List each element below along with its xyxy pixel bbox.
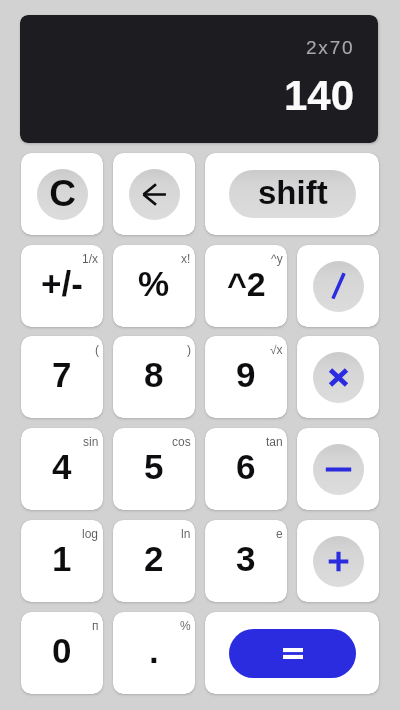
staticText: cos — [172, 435, 191, 448]
button[interactable]: decimal point — [113, 612, 195, 694]
staticText: C — [49, 173, 76, 214]
staticText: +/- — [41, 264, 83, 303]
button[interactable]: percent — [113, 245, 195, 327]
button[interactable]: Divide — [297, 245, 379, 327]
staticText: 6 — [236, 447, 256, 486]
button[interactable]: Subtract — [297, 428, 379, 510]
button[interactable]: Add — [297, 520, 379, 602]
button[interactable]: Clear — [21, 153, 103, 235]
staticText: 7 — [52, 355, 72, 394]
button[interactable]: Backspace — [113, 153, 195, 235]
button[interactable]: 4 — [21, 428, 103, 510]
staticText: 3 — [236, 539, 256, 578]
staticText: 0 — [52, 631, 72, 670]
button[interactable]: 1 — [21, 520, 103, 602]
staticText: % — [138, 264, 170, 303]
staticText: e — [276, 527, 283, 540]
button[interactable]: power of two — [205, 245, 287, 327]
staticText: п — [92, 619, 99, 632]
button[interactable]: equals — [205, 612, 379, 694]
staticText: ln — [181, 527, 191, 540]
button[interactable]: 5 — [113, 428, 195, 510]
button[interactable]: 2x70 — [20, 15, 378, 143]
staticText: 9 — [236, 355, 256, 394]
button[interactable]: shift — [205, 153, 379, 235]
staticText: shift — [258, 174, 328, 211]
staticText: . — [149, 631, 159, 670]
button[interactable]: Multiply — [297, 336, 379, 418]
button[interactable]: 2 — [113, 520, 195, 602]
staticText: 1/x — [82, 252, 99, 265]
staticText: ) — [187, 343, 191, 356]
staticText: ^2 — [227, 265, 266, 303]
staticText: √x — [270, 343, 283, 356]
button[interactable]: 3 — [205, 520, 287, 602]
staticText: 5 — [144, 447, 164, 486]
staticText: 4 — [52, 447, 72, 486]
staticText: ( — [95, 343, 99, 356]
staticText: 2 — [144, 539, 164, 578]
staticText: sin — [83, 435, 99, 448]
staticText: 1 — [52, 539, 72, 578]
staticText: 8 — [144, 355, 164, 394]
button[interactable]: 9 — [205, 336, 287, 418]
button[interactable]: 7 — [21, 336, 103, 418]
staticText: 2x70 — [306, 37, 355, 58]
button[interactable]: 8 — [113, 336, 195, 418]
button[interactable]: 0 — [21, 612, 103, 694]
staticText: 140 — [284, 72, 355, 119]
staticText: tan — [266, 435, 283, 448]
staticText: % — [180, 619, 191, 632]
staticText: log — [82, 527, 99, 540]
staticText: x! — [181, 252, 191, 265]
staticText: ^y — [271, 252, 283, 265]
button[interactable]: plus minus — [21, 245, 103, 327]
button[interactable]: 6 — [205, 428, 287, 510]
